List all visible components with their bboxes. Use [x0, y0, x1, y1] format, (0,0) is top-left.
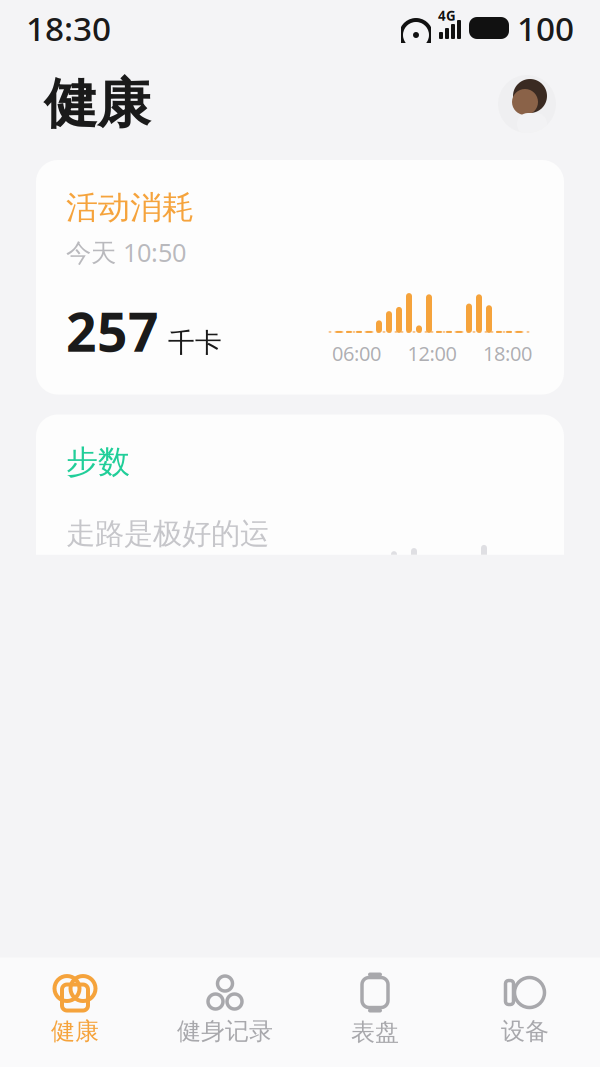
staticText: 今天 10:50: [66, 235, 186, 269]
staticText: 健康: [44, 71, 150, 137]
staticText: 健身记录: [177, 1016, 273, 1046]
button[interactable]: 活动消耗: [36, 160, 564, 394]
staticText: 活动消耗: [66, 188, 194, 227]
staticText: 今天 16:35: [66, 1005, 186, 1038]
staticText: 设备: [501, 1016, 549, 1046]
staticText: 18:00: [483, 340, 532, 366]
button[interactable]: 心率: [36, 929, 564, 1067]
button[interactable]: 步数: [36, 414, 564, 652]
staticText: 100: [517, 6, 574, 50]
button[interactable]: 个人资料: [498, 75, 556, 133]
staticText: 千卡: [168, 326, 222, 359]
button[interactable]: 设备: [450, 966, 600, 1052]
staticText: 健康: [51, 1016, 99, 1046]
staticText: 06:00: [332, 340, 381, 366]
button[interactable]: 健身记录: [150, 966, 300, 1052]
staticText: 走路是极好的运动，养 成走路的习惯: [66, 516, 269, 624]
button[interactable]: 健康: [0, 966, 150, 1052]
staticText: 步数: [66, 442, 130, 482]
staticText: 表盘: [351, 1017, 399, 1047]
staticText: 4G: [438, 7, 456, 24]
staticText: 257: [66, 296, 159, 366]
button[interactable]: 表盘: [300, 965, 450, 1053]
staticText: 12:00: [407, 340, 456, 366]
staticText: 18:30: [26, 6, 111, 50]
staticText: 心率: [66, 957, 130, 997]
